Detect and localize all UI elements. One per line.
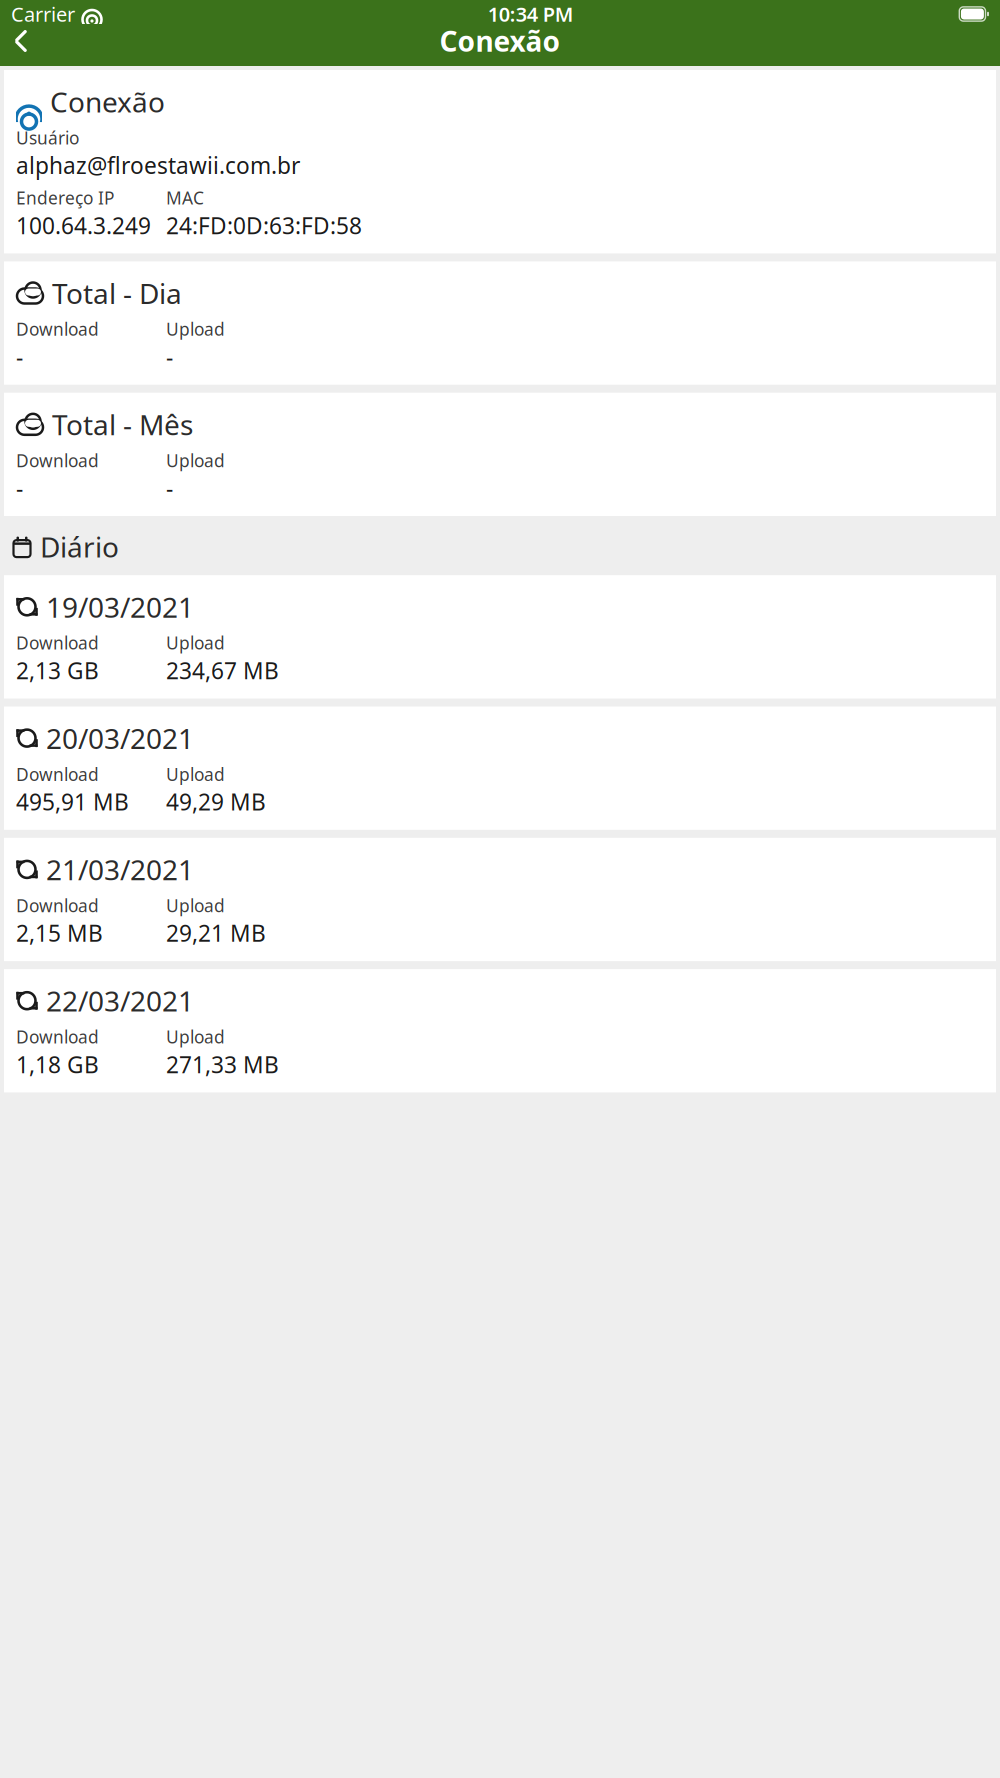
- staticText: Upload: [166, 318, 225, 341]
- staticText: MAC: [166, 186, 204, 209]
- staticText: Download: [16, 894, 99, 917]
- staticText: 495,91 MB: [16, 787, 129, 817]
- staticText: Download: [16, 318, 99, 341]
- staticText: alphaz@flroestawii.com.br: [16, 150, 300, 180]
- staticText: 2,13 GB: [16, 655, 99, 685]
- staticText: Upload: [166, 449, 225, 472]
- staticText: 234,67 MB: [166, 655, 279, 685]
- staticText: Diário: [40, 528, 119, 565]
- staticText: 49,29 MB: [166, 787, 266, 817]
- staticText: 271,33 MB: [166, 1049, 279, 1079]
- staticText: Carrier: [11, 1, 75, 27]
- staticText: Total - Dia: [52, 274, 182, 312]
- staticText: Conexão: [439, 22, 560, 60]
- staticText: 24:FD:0D:63:FD:58: [166, 210, 362, 240]
- staticText: Endereço IP: [16, 186, 114, 209]
- staticText: 10:34 PM: [488, 1, 574, 27]
- staticText: Total - Mês: [52, 406, 193, 443]
- staticText: 2,15 MB: [16, 918, 103, 948]
- button[interactable]: Back: [0, 20, 42, 62]
- staticText: Download: [16, 631, 99, 654]
- staticText: -: [166, 473, 173, 503]
- staticText: 29,21 MB: [166, 918, 266, 948]
- staticText: 21/03/2021: [46, 851, 194, 888]
- staticText: Download: [16, 449, 99, 472]
- staticText: Upload: [166, 631, 225, 654]
- staticText: Usuário: [16, 126, 79, 149]
- staticText: -: [16, 342, 23, 372]
- staticText: 22/03/2021: [46, 982, 194, 1019]
- staticText: -: [16, 473, 23, 503]
- staticText: 100.64.3.249: [16, 210, 151, 240]
- button[interactable]: 22/03/2021: [4, 969, 996, 1092]
- staticText: Download: [16, 763, 99, 786]
- staticText: Conexão: [50, 83, 165, 120]
- staticText: -: [166, 342, 173, 372]
- staticText: Download: [16, 1025, 99, 1048]
- button[interactable]: 20/03/2021: [4, 706, 996, 830]
- button[interactable]: 21/03/2021: [4, 838, 996, 961]
- staticText: Upload: [166, 1025, 225, 1048]
- staticText: Upload: [166, 763, 225, 786]
- staticText: 1,18 GB: [16, 1049, 99, 1079]
- button[interactable]: 19/03/2021: [4, 575, 996, 698]
- staticText: 20/03/2021: [46, 719, 194, 757]
- staticText: Upload: [166, 894, 225, 917]
- staticText: 19/03/2021: [46, 588, 194, 625]
